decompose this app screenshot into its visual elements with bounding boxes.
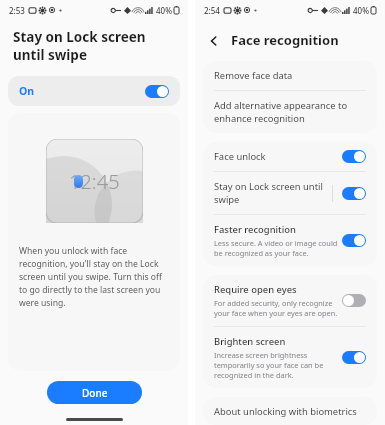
staticText: 40% xyxy=(353,5,369,16)
staticText: Face recognition xyxy=(231,31,339,49)
staticText: 2:54 xyxy=(204,5,220,16)
button[interactable]: Toggle on xyxy=(342,351,366,364)
button[interactable]: Add alternative appearance to enhance re… xyxy=(203,91,377,133)
staticText: Increase screen brightness temporarily s… xyxy=(214,350,342,380)
staticText: On xyxy=(19,84,35,98)
button[interactable]: Face unlock xyxy=(203,142,377,171)
staticText: Require open eyes xyxy=(214,283,297,296)
button[interactable]: Brighten screen xyxy=(203,327,377,388)
staticText: Stay on Lock screen until swipe xyxy=(214,180,332,206)
staticText: For added security, only recognize your … xyxy=(214,298,342,318)
staticText: 40% xyxy=(156,5,172,16)
staticText: Brighten screen xyxy=(214,335,286,348)
button[interactable]: Toggle on xyxy=(342,150,366,163)
button[interactable]: Toggle on xyxy=(145,85,169,98)
button[interactable]: Toggle on xyxy=(342,234,366,247)
staticText: Add alternative appearance to enhance re… xyxy=(214,99,366,125)
staticText: Face unlock xyxy=(214,150,266,163)
button[interactable]: Stay on Lock screen until swipe xyxy=(203,172,377,214)
button[interactable]: On xyxy=(8,76,180,106)
button[interactable]: Toggle on xyxy=(342,187,366,200)
button[interactable]: Back xyxy=(205,32,222,49)
staticText: 2:53 xyxy=(9,5,25,16)
staticText: Less secure. A video or image could be r… xyxy=(214,238,342,258)
staticText: Faster recognition xyxy=(214,223,296,236)
button[interactable]: Done xyxy=(47,381,142,404)
staticText: 12:45 xyxy=(69,168,120,195)
staticText: When you unlock with face recognition, y… xyxy=(19,245,169,309)
button[interactable]: Require open eyes xyxy=(203,275,377,326)
staticText: Done xyxy=(82,386,108,400)
button[interactable]: Remove face data xyxy=(203,61,377,90)
button[interactable]: About unlocking with biometrics xyxy=(203,397,377,425)
button[interactable]: Faster recognition xyxy=(203,215,377,266)
staticText: About unlocking with biometrics xyxy=(214,405,357,417)
staticText: Stay on Lock screen until swipe xyxy=(13,28,175,64)
staticText: Remove face data xyxy=(214,69,293,82)
button[interactable]: Toggle off xyxy=(342,294,366,307)
